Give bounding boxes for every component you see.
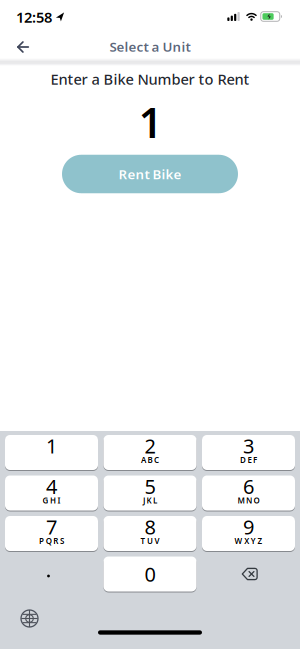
staticText: 4 xyxy=(46,473,57,500)
staticText: JKL xyxy=(143,495,157,506)
staticText: 7 xyxy=(46,513,57,540)
button[interactable]: 9 xyxy=(202,516,295,552)
button[interactable]: 0 xyxy=(103,556,196,592)
staticText: 0 xyxy=(144,561,155,587)
button[interactable]: 6 xyxy=(202,475,295,511)
button[interactable]: Back xyxy=(8,32,38,62)
button[interactable]: 2 xyxy=(103,435,196,471)
staticText: TUV xyxy=(140,535,160,546)
button[interactable]: Decimal point xyxy=(5,556,98,592)
button[interactable]: 7 xyxy=(5,516,98,552)
staticText: DEF xyxy=(240,454,257,465)
button[interactable]: 1 xyxy=(5,435,98,471)
button[interactable]: Delete xyxy=(202,556,295,592)
staticText: 1 xyxy=(139,95,163,149)
staticText: 8 xyxy=(144,513,155,540)
staticText: MNO xyxy=(237,495,260,506)
button[interactable]: 4 xyxy=(5,475,98,511)
button[interactable]: 3 xyxy=(202,435,295,471)
staticText: Rent Bike xyxy=(118,165,181,183)
staticText: 1 xyxy=(46,432,57,459)
staticText: 6 xyxy=(243,473,254,500)
staticText: 2 xyxy=(144,432,155,459)
staticText: Select a Unit xyxy=(109,38,190,55)
staticText: GHI xyxy=(42,495,61,506)
staticText: WXYZ xyxy=(235,535,262,546)
staticText: ABC xyxy=(141,454,159,465)
staticText: PQRS xyxy=(39,535,64,546)
button[interactable]: 8 xyxy=(103,516,196,552)
button[interactable]: Next keyboard xyxy=(14,603,44,633)
staticText: Enter a Bike Number to Rent xyxy=(50,69,249,89)
staticText: 12:58 xyxy=(16,7,52,27)
staticText: 9 xyxy=(243,513,254,540)
staticText: 5 xyxy=(144,473,155,500)
button[interactable]: 5 xyxy=(103,475,196,511)
button[interactable]: Rent Bike xyxy=(62,155,238,193)
staticText: 3 xyxy=(243,432,254,459)
